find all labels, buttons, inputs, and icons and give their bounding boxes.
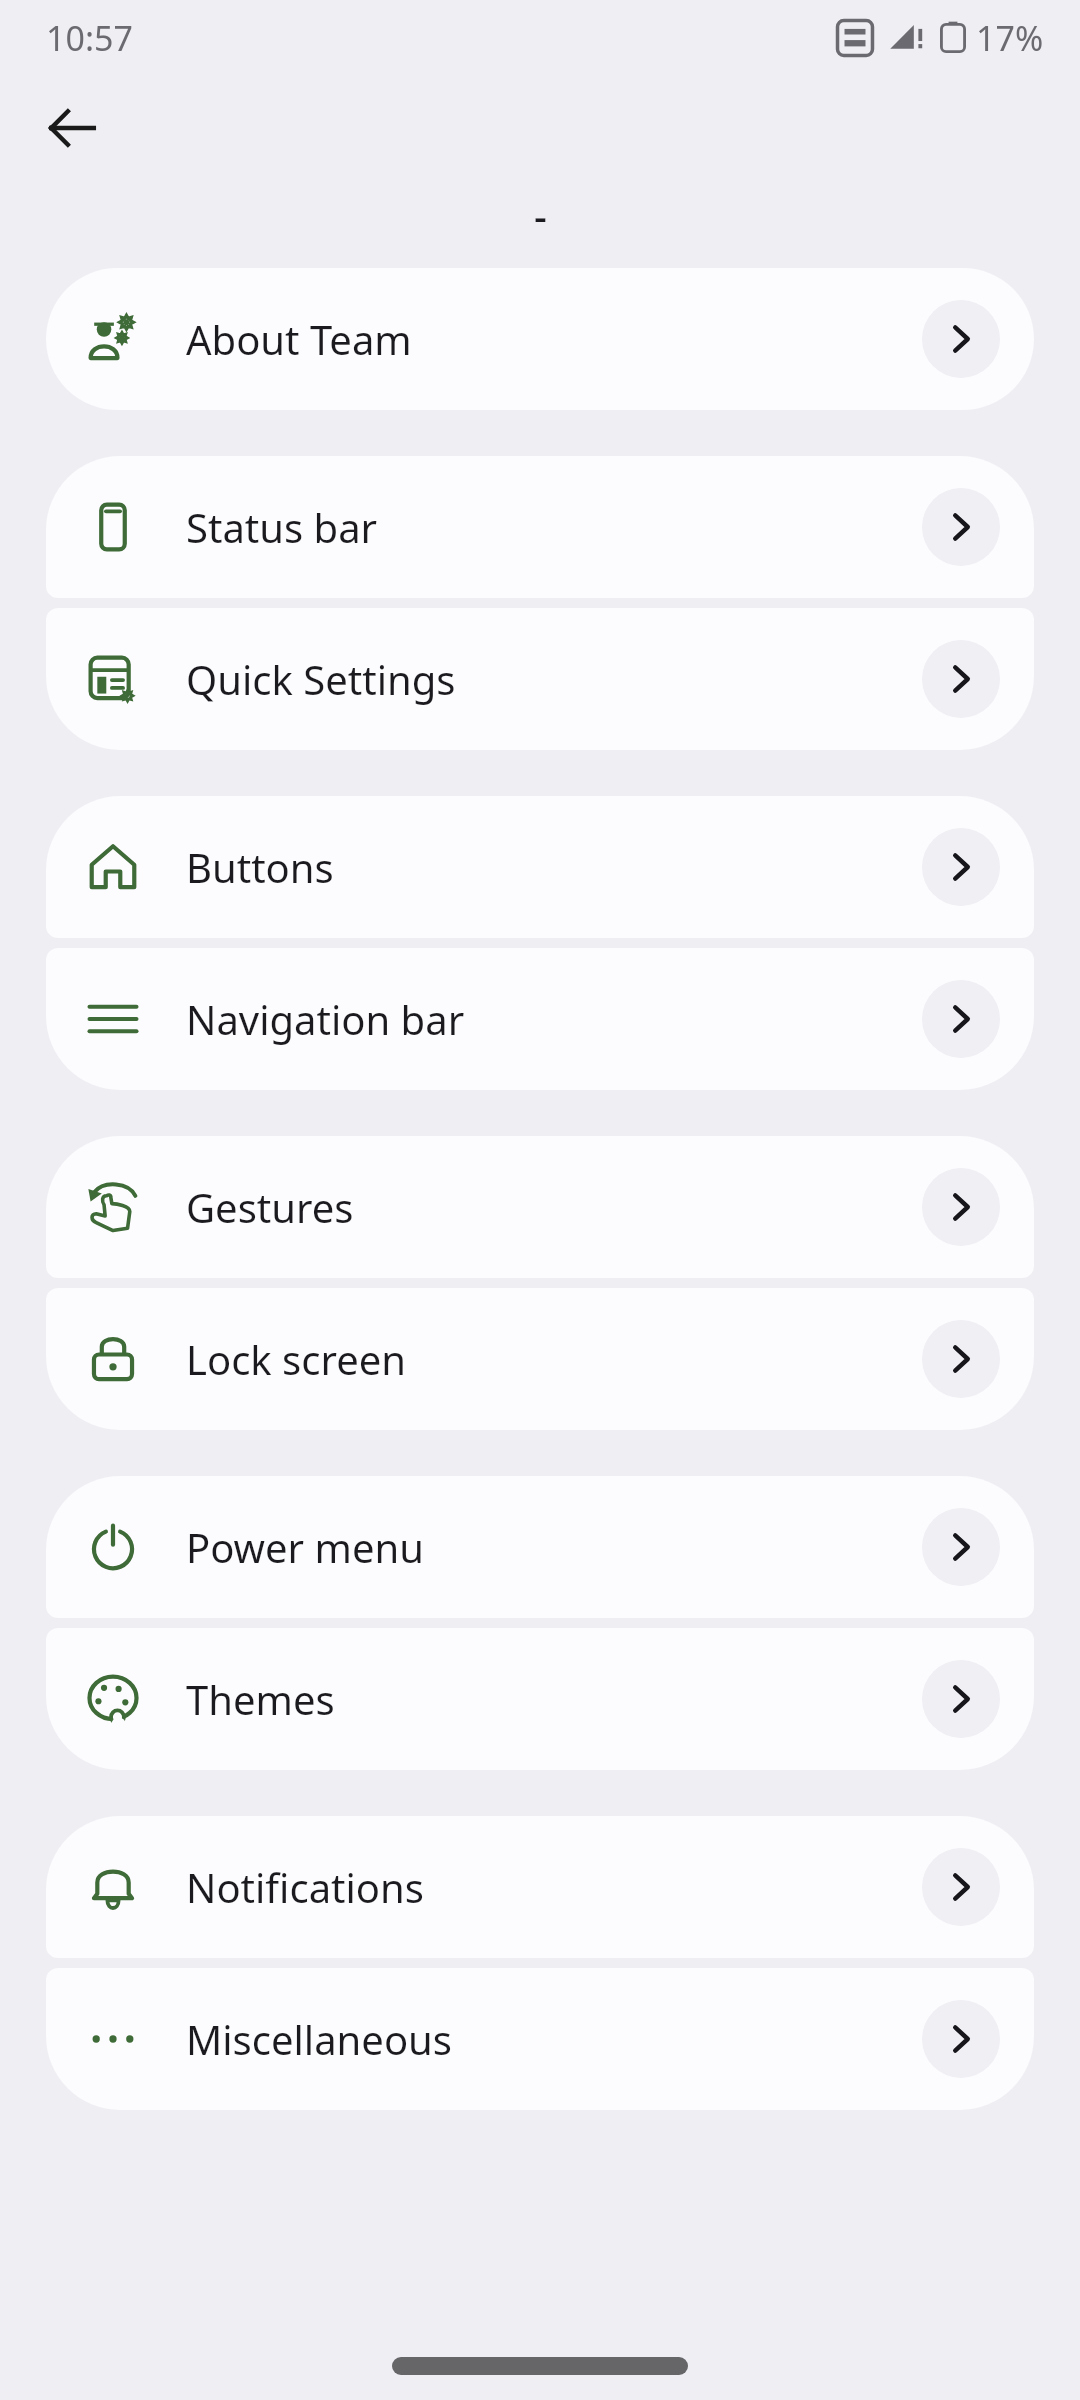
button[interactable]: Status bar — [46, 456, 1034, 598]
button[interactable]: Back — [30, 86, 114, 170]
button[interactable]: Themes — [46, 1628, 1034, 1770]
staticText: Navigation bar — [186, 992, 922, 1046]
staticText: Lock screen — [186, 1332, 922, 1386]
staticText: Themes — [186, 1672, 922, 1726]
staticText: 17% — [976, 15, 1044, 61]
staticText: Notifications — [186, 1860, 922, 1914]
staticText: Miscellaneous — [186, 2012, 922, 2066]
staticText: Quick Settings — [186, 652, 922, 706]
button[interactable]: Gestures — [46, 1136, 1034, 1278]
staticText: Gestures — [186, 1180, 922, 1234]
button[interactable]: Power menu — [46, 1476, 1034, 1618]
button[interactable]: Miscellaneous — [46, 1968, 1034, 2110]
button[interactable]: About Team — [46, 268, 1034, 410]
staticText: Power menu — [186, 1520, 922, 1574]
staticText: About Team — [186, 312, 922, 366]
staticText: - — [534, 188, 547, 242]
staticText: Status bar — [186, 500, 922, 554]
button[interactable]: Buttons — [46, 796, 1034, 938]
staticText: Buttons — [186, 840, 922, 894]
button[interactable]: Notifications — [46, 1816, 1034, 1958]
staticText: 10:57 — [46, 15, 133, 61]
button[interactable]: Lock screen — [46, 1288, 1034, 1430]
button[interactable]: Navigation bar — [46, 948, 1034, 1090]
button[interactable]: Quick Settings — [46, 608, 1034, 750]
